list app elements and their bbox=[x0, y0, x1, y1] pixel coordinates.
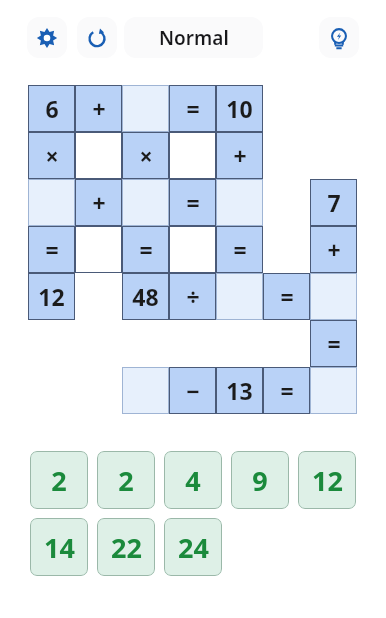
button[interactable]: + bbox=[216, 132, 263, 179]
button[interactable]: 12 bbox=[298, 451, 356, 509]
button[interactable] bbox=[169, 132, 216, 179]
button[interactable]: = bbox=[122, 226, 169, 273]
button[interactable]: 10 bbox=[216, 85, 263, 132]
staticText: 7 bbox=[327, 187, 341, 218]
button[interactable]: + bbox=[310, 226, 357, 273]
button[interactable]: = bbox=[263, 367, 310, 414]
button[interactable]: = bbox=[28, 226, 75, 273]
button[interactable]: 7 bbox=[310, 179, 357, 226]
button[interactable]: 6 bbox=[28, 85, 75, 132]
button[interactable]: − bbox=[169, 367, 216, 414]
button[interactable]: Normal bbox=[124, 17, 263, 58]
staticText: 12 bbox=[312, 462, 343, 499]
button[interactable] bbox=[75, 132, 122, 179]
button[interactable]: 4 bbox=[164, 451, 222, 509]
staticText: 9 bbox=[252, 462, 268, 499]
button[interactable]: 22 bbox=[97, 518, 155, 576]
button[interactable]: + bbox=[75, 85, 122, 132]
staticText: 6 bbox=[45, 93, 59, 124]
staticText: = bbox=[327, 328, 341, 359]
staticText: + bbox=[327, 234, 341, 265]
staticText: × bbox=[139, 140, 153, 171]
staticText: = bbox=[280, 375, 294, 406]
button[interactable]: 48 bbox=[122, 273, 169, 320]
button[interactable] bbox=[122, 179, 169, 226]
button[interactable]: 2 bbox=[30, 451, 88, 509]
staticText: + bbox=[92, 187, 106, 218]
staticText: ÷ bbox=[186, 281, 200, 312]
button[interactable] bbox=[75, 226, 122, 273]
staticText: 10 bbox=[226, 93, 253, 124]
staticText: 12 bbox=[38, 281, 65, 312]
staticText: 2 bbox=[118, 462, 134, 499]
button[interactable]: = bbox=[263, 273, 310, 320]
button[interactable]: 13 bbox=[216, 367, 263, 414]
button[interactable]: 2 bbox=[97, 451, 155, 509]
staticText: = bbox=[186, 187, 200, 218]
button[interactable]: = bbox=[216, 226, 263, 273]
button[interactable] bbox=[310, 367, 357, 414]
button[interactable] bbox=[122, 85, 169, 132]
staticText: Normal bbox=[159, 25, 229, 51]
button[interactable] bbox=[216, 179, 263, 226]
button[interactable]: = bbox=[169, 179, 216, 226]
button[interactable]: 12 bbox=[28, 273, 75, 320]
staticText: = bbox=[45, 234, 59, 265]
staticText: = bbox=[280, 281, 294, 312]
staticText: 4 bbox=[185, 462, 201, 499]
staticText: 48 bbox=[132, 281, 159, 312]
staticText: − bbox=[186, 375, 200, 406]
button[interactable] bbox=[28, 179, 75, 226]
button[interactable] bbox=[216, 273, 263, 320]
button[interactable]: = bbox=[169, 85, 216, 132]
button[interactable]: Hint bbox=[319, 17, 359, 58]
button[interactable]: 9 bbox=[231, 451, 289, 509]
button[interactable]: × bbox=[28, 132, 75, 179]
button[interactable]: + bbox=[75, 179, 122, 226]
button[interactable] bbox=[169, 226, 216, 273]
button[interactable]: ÷ bbox=[169, 273, 216, 320]
staticText: + bbox=[92, 93, 106, 124]
button[interactable]: 14 bbox=[30, 518, 88, 576]
button[interactable]: = bbox=[310, 320, 357, 367]
staticText: × bbox=[45, 140, 59, 171]
staticText: 13 bbox=[226, 375, 253, 406]
staticText: = bbox=[186, 93, 200, 124]
button[interactable] bbox=[310, 273, 357, 320]
staticText: = bbox=[139, 234, 153, 265]
button[interactable]: × bbox=[122, 132, 169, 179]
staticText: 22 bbox=[111, 529, 142, 566]
staticText: 2 bbox=[51, 462, 67, 499]
button[interactable] bbox=[122, 367, 169, 414]
button[interactable]: Restart bbox=[77, 17, 117, 58]
button[interactable]: Settings bbox=[27, 17, 67, 58]
staticText: + bbox=[233, 140, 247, 171]
staticText: 14 bbox=[44, 529, 75, 566]
button[interactable]: 24 bbox=[164, 518, 222, 576]
staticText: 24 bbox=[178, 529, 209, 566]
staticText: = bbox=[233, 234, 247, 265]
